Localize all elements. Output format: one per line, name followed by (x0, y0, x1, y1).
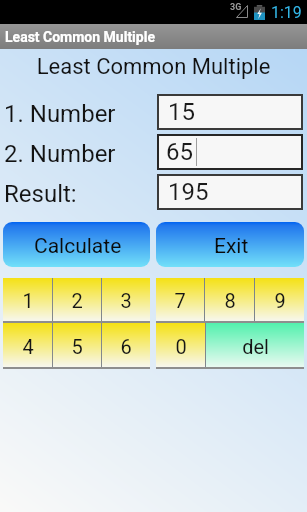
button[interactable]: 1 (3, 278, 52, 321)
staticText: Least Common Multiple (5, 29, 155, 45)
button[interactable]: 65 (159, 136, 301, 168)
staticText: 9 (274, 289, 286, 312)
staticText: 15 (168, 98, 195, 126)
staticText: Exit (214, 234, 249, 259)
button[interactable]: 7 (156, 278, 204, 321)
button[interactable]: Calculate (3, 222, 150, 267)
staticText: 1 (22, 289, 34, 312)
staticText: 1:19 (271, 3, 302, 22)
button[interactable]: 0 (156, 323, 205, 367)
staticText: 8 (224, 289, 236, 312)
staticText: Least Common Multiple (0, 54, 307, 80)
staticText: del (242, 335, 269, 358)
button[interactable]: 3 (102, 278, 150, 321)
staticText: 195 (168, 178, 209, 206)
button[interactable]: 4 (3, 323, 52, 367)
button[interactable]: Exit (156, 222, 304, 267)
button[interactable]: 2 (53, 278, 101, 321)
staticText: 2 (71, 289, 83, 312)
button[interactable]: 9 (255, 278, 304, 321)
staticText: 6 (120, 335, 132, 358)
button[interactable]: 5 (53, 323, 101, 367)
staticText: 3 (120, 289, 132, 312)
staticText: 65 (166, 138, 193, 166)
staticText: 4 (22, 335, 34, 358)
staticText: 5 (71, 335, 83, 358)
button[interactable]: 15 (159, 96, 301, 128)
button[interactable]: 195 (159, 176, 301, 208)
staticText: 2. Number (4, 140, 116, 168)
button[interactable]: 8 (205, 278, 254, 321)
staticText: 7 (174, 289, 186, 312)
button[interactable]: 6 (102, 323, 150, 367)
staticText: 3G (230, 2, 242, 13)
staticText: Calculate (34, 234, 122, 259)
staticText: 0 (175, 335, 187, 358)
button[interactable]: del (206, 323, 304, 367)
staticText: Result: (4, 180, 77, 208)
staticText: 1. Number (4, 100, 116, 128)
